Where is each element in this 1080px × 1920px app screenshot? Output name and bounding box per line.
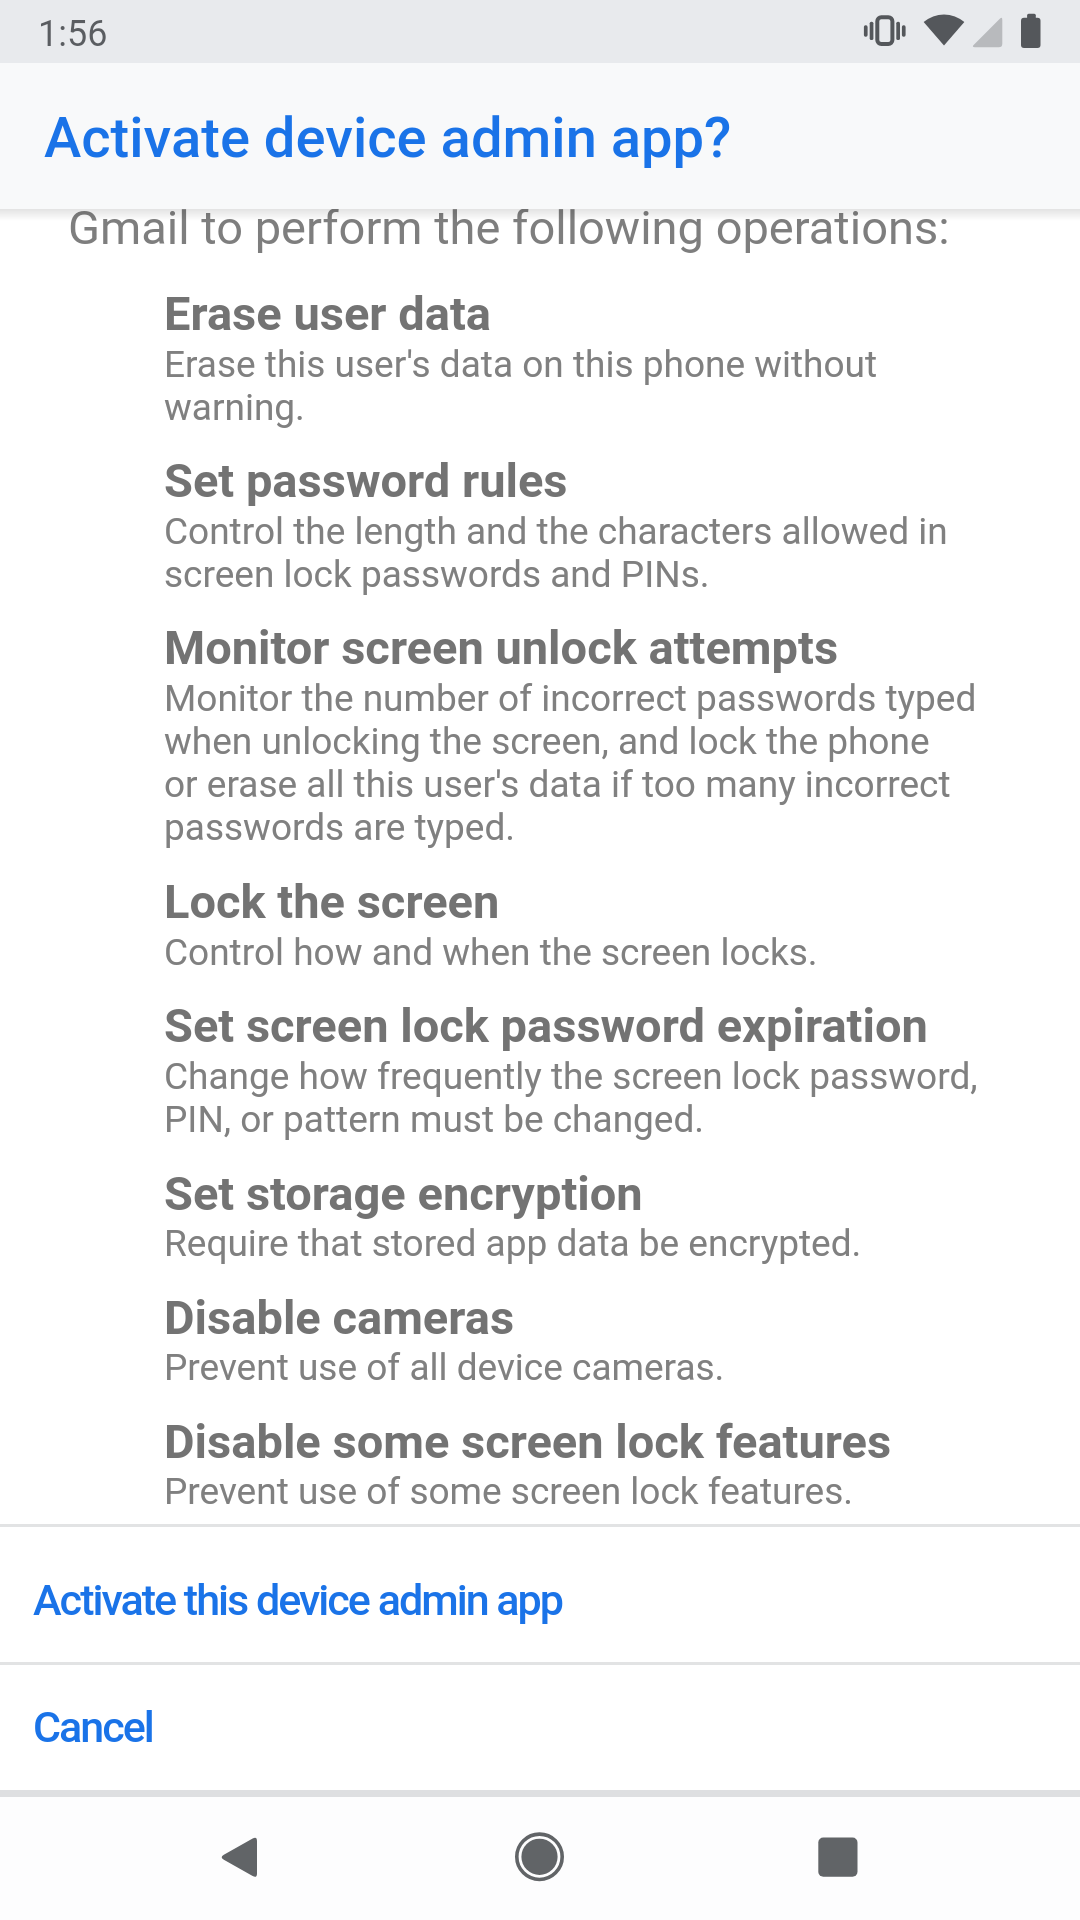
staticText: Prevent use of some screen lock features… xyxy=(164,1470,854,1513)
staticText: Prevent use of all device cameras. xyxy=(164,1346,725,1389)
staticText: Erase this user's data on this phone wit… xyxy=(164,343,878,429)
staticText: Set storage encryption xyxy=(164,1166,643,1221)
button[interactable] xyxy=(798,1817,878,1897)
staticText: Monitor screen unlock attempts xyxy=(164,620,839,675)
staticText: 1:56 xyxy=(38,13,108,55)
staticText: Monitor the number of incorrect password… xyxy=(164,677,977,849)
staticText: Lock the screen xyxy=(164,874,500,929)
staticText: Activate this device admin app xyxy=(33,1575,562,1625)
staticText: Set screen lock password expiration xyxy=(164,998,928,1053)
staticText: Disable cameras xyxy=(164,1290,515,1345)
staticText: Control how and when the screen locks. xyxy=(164,931,818,974)
staticText: Require that stored app data be encrypte… xyxy=(164,1222,862,1265)
button[interactable] xyxy=(198,1817,278,1897)
staticText: Gmail to perform the following operation… xyxy=(68,200,950,255)
staticText: Change how frequently the screen lock pa… xyxy=(164,1055,978,1141)
button[interactable]: Activate this device admin app xyxy=(0,1527,1080,1662)
staticText: Control the length and the characters al… xyxy=(164,510,948,596)
button[interactable]: Cancel xyxy=(0,1664,1080,1790)
staticText: Activate device admin app? xyxy=(44,105,732,171)
staticText: Erase user data xyxy=(164,286,491,341)
button[interactable] xyxy=(499,1817,579,1897)
staticText: Cancel xyxy=(33,1702,153,1752)
staticText: Disable some screen lock features xyxy=(164,1414,892,1469)
staticText: Set password rules xyxy=(164,453,568,508)
